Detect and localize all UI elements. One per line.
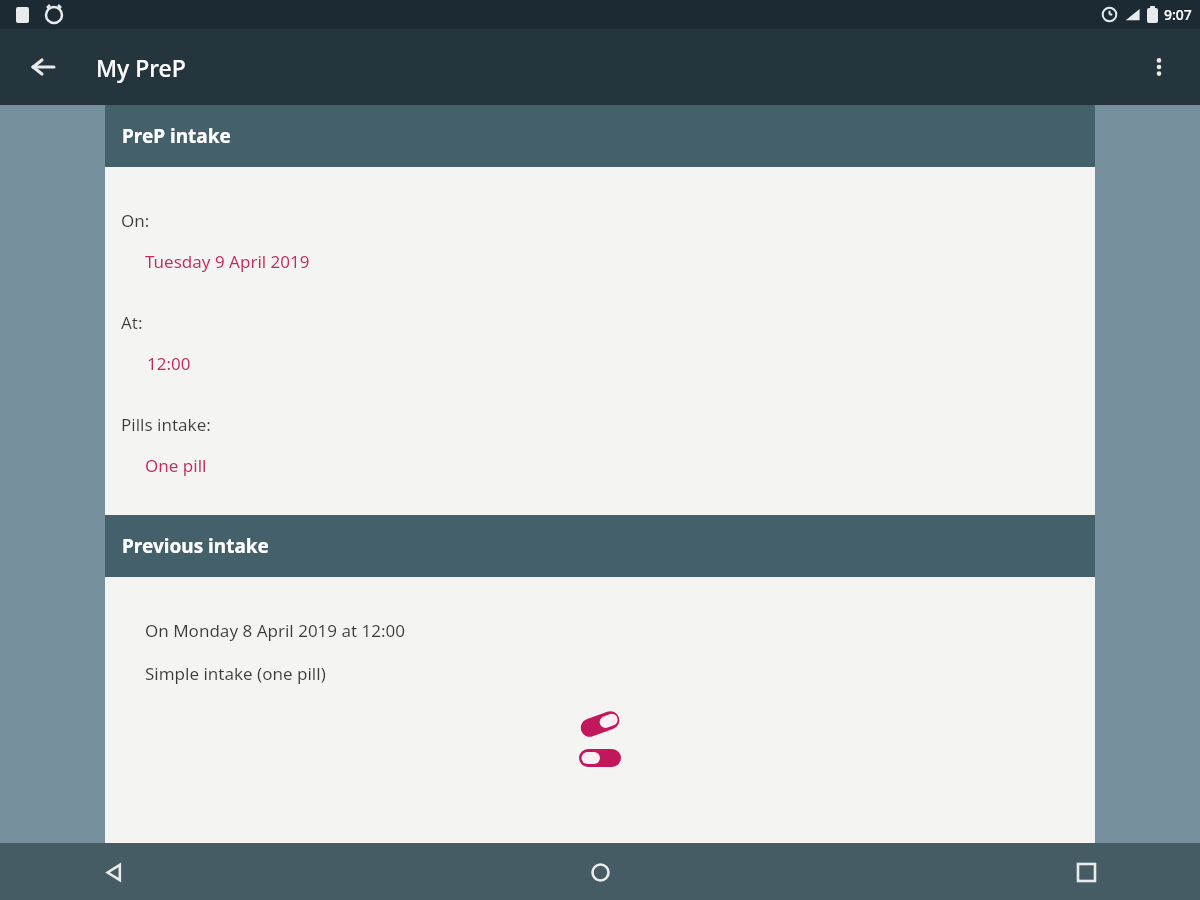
staticText: Previous intake [122,533,269,559]
staticText: On: [121,209,150,232]
staticText: 12:00 [147,352,191,375]
button[interactable]: Previous intake [105,515,1095,577]
staticText: PreP intake [122,123,231,149]
staticText: Simple intake (one pill) [145,662,326,685]
staticText: At: [121,311,143,334]
staticText: Pills intake: [121,413,211,436]
staticText: My PreP [96,52,186,83]
button[interactable]: Back [90,848,138,896]
button[interactable]: Recents [1062,848,1110,896]
button[interactable]: PreP intake [105,105,1095,167]
button[interactable]: More options [1136,44,1182,90]
staticText: 9:07 [1164,5,1192,24]
staticText: Tuesday 9 April 2019 [145,250,310,273]
button[interactable]: Back [20,44,66,90]
staticText: On Monday 8 April 2019 at 12:00 [145,619,406,642]
button[interactable]: Home [576,848,624,896]
staticText: One pill [145,454,207,477]
